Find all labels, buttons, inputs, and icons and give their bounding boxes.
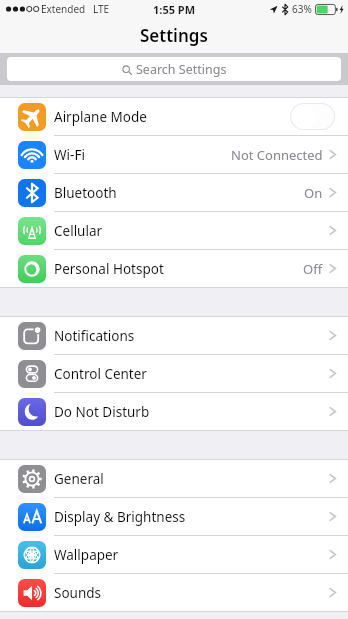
staticText: Wi-Fi	[54, 146, 85, 164]
staticText: Control Center	[54, 365, 147, 383]
button[interactable]: General	[0, 460, 348, 498]
button[interactable]: Personal Hotspot	[0, 250, 348, 287]
button[interactable]: Search Settings	[7, 57, 341, 81]
staticText: LTE	[93, 2, 110, 16]
staticText: Airplane Mode	[54, 108, 147, 126]
staticText: Off	[303, 260, 323, 278]
button[interactable]: Control Center	[0, 355, 348, 393]
staticText: Bluetooth	[54, 184, 117, 202]
button[interactable]: Notifications	[0, 317, 348, 355]
staticText: Extended	[41, 2, 86, 16]
button[interactable]: Sounds	[0, 574, 348, 611]
button[interactable]: Wi-Fi	[0, 136, 348, 174]
staticText: Search Settings	[136, 61, 227, 78]
staticText: Cellular	[54, 222, 103, 240]
button[interactable]: Do Not Disturb	[0, 393, 348, 430]
staticText: Wallpaper	[54, 546, 119, 564]
staticText: 63%	[292, 2, 312, 16]
staticText: 1:55 PM	[153, 2, 196, 17]
staticText: Display & Brightness	[54, 508, 186, 526]
staticText: Personal Hotspot	[54, 260, 164, 278]
button[interactable]: Airplane Mode	[0, 98, 348, 136]
staticText: Settings	[140, 24, 208, 47]
button[interactable]: Cellular	[0, 212, 348, 250]
staticText: General	[54, 470, 104, 488]
staticText: Not Connected	[231, 146, 323, 164]
staticText: Do Not Disturb	[54, 403, 150, 421]
button[interactable]: Display & Brightness	[0, 498, 348, 536]
staticText: On	[304, 184, 323, 202]
button[interactable]: Airplane Mode toggle	[290, 103, 335, 130]
button[interactable]: Bluetooth	[0, 174, 348, 212]
staticText: Sounds	[54, 584, 102, 602]
staticText: Notifications	[54, 327, 135, 345]
button[interactable]: Wallpaper	[0, 536, 348, 574]
